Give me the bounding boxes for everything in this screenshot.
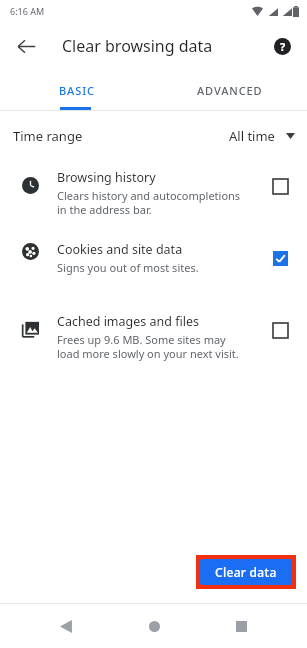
staticText: Time range xyxy=(13,127,83,145)
button[interactable]: Help xyxy=(265,29,299,63)
staticText: ? xyxy=(280,39,286,54)
staticText: BASIC xyxy=(59,83,95,98)
staticText: 6:16 AM xyxy=(10,5,45,17)
button[interactable]: Back xyxy=(8,28,44,64)
staticText: Browsing history xyxy=(57,169,156,186)
staticText: Cached images and files xyxy=(57,313,199,330)
button[interactable]: Clear data xyxy=(200,559,292,585)
button[interactable]: Browsing history xyxy=(0,161,307,233)
button[interactable]: BASIC xyxy=(0,70,153,110)
button[interactable]: Home xyxy=(132,604,176,648)
staticText: Signs you out of most sites. xyxy=(57,260,199,275)
staticText: Cookies and site data xyxy=(57,241,183,258)
staticText: Frees up 9.6 MB. Some sites may load mor… xyxy=(57,332,239,362)
button[interactable]: Time range xyxy=(0,111,307,161)
staticText: Clear browsing data xyxy=(62,35,213,57)
staticText: Clears history and autocompletions in th… xyxy=(57,188,241,218)
button[interactable]: Cookies and site data xyxy=(0,233,307,305)
button[interactable]: Cached images and files xyxy=(267,317,293,343)
staticText: ADVANCED xyxy=(197,83,263,98)
button[interactable]: Recent apps xyxy=(219,604,263,648)
button[interactable]: Back xyxy=(44,604,88,648)
button[interactable]: Cookies and site data xyxy=(267,245,293,271)
button[interactable]: ADVANCED xyxy=(153,70,307,110)
staticText: All time xyxy=(229,127,275,145)
button[interactable]: Cached images and files xyxy=(0,305,307,377)
staticText: Clear data xyxy=(215,564,277,580)
button[interactable]: Browsing history xyxy=(267,173,293,199)
